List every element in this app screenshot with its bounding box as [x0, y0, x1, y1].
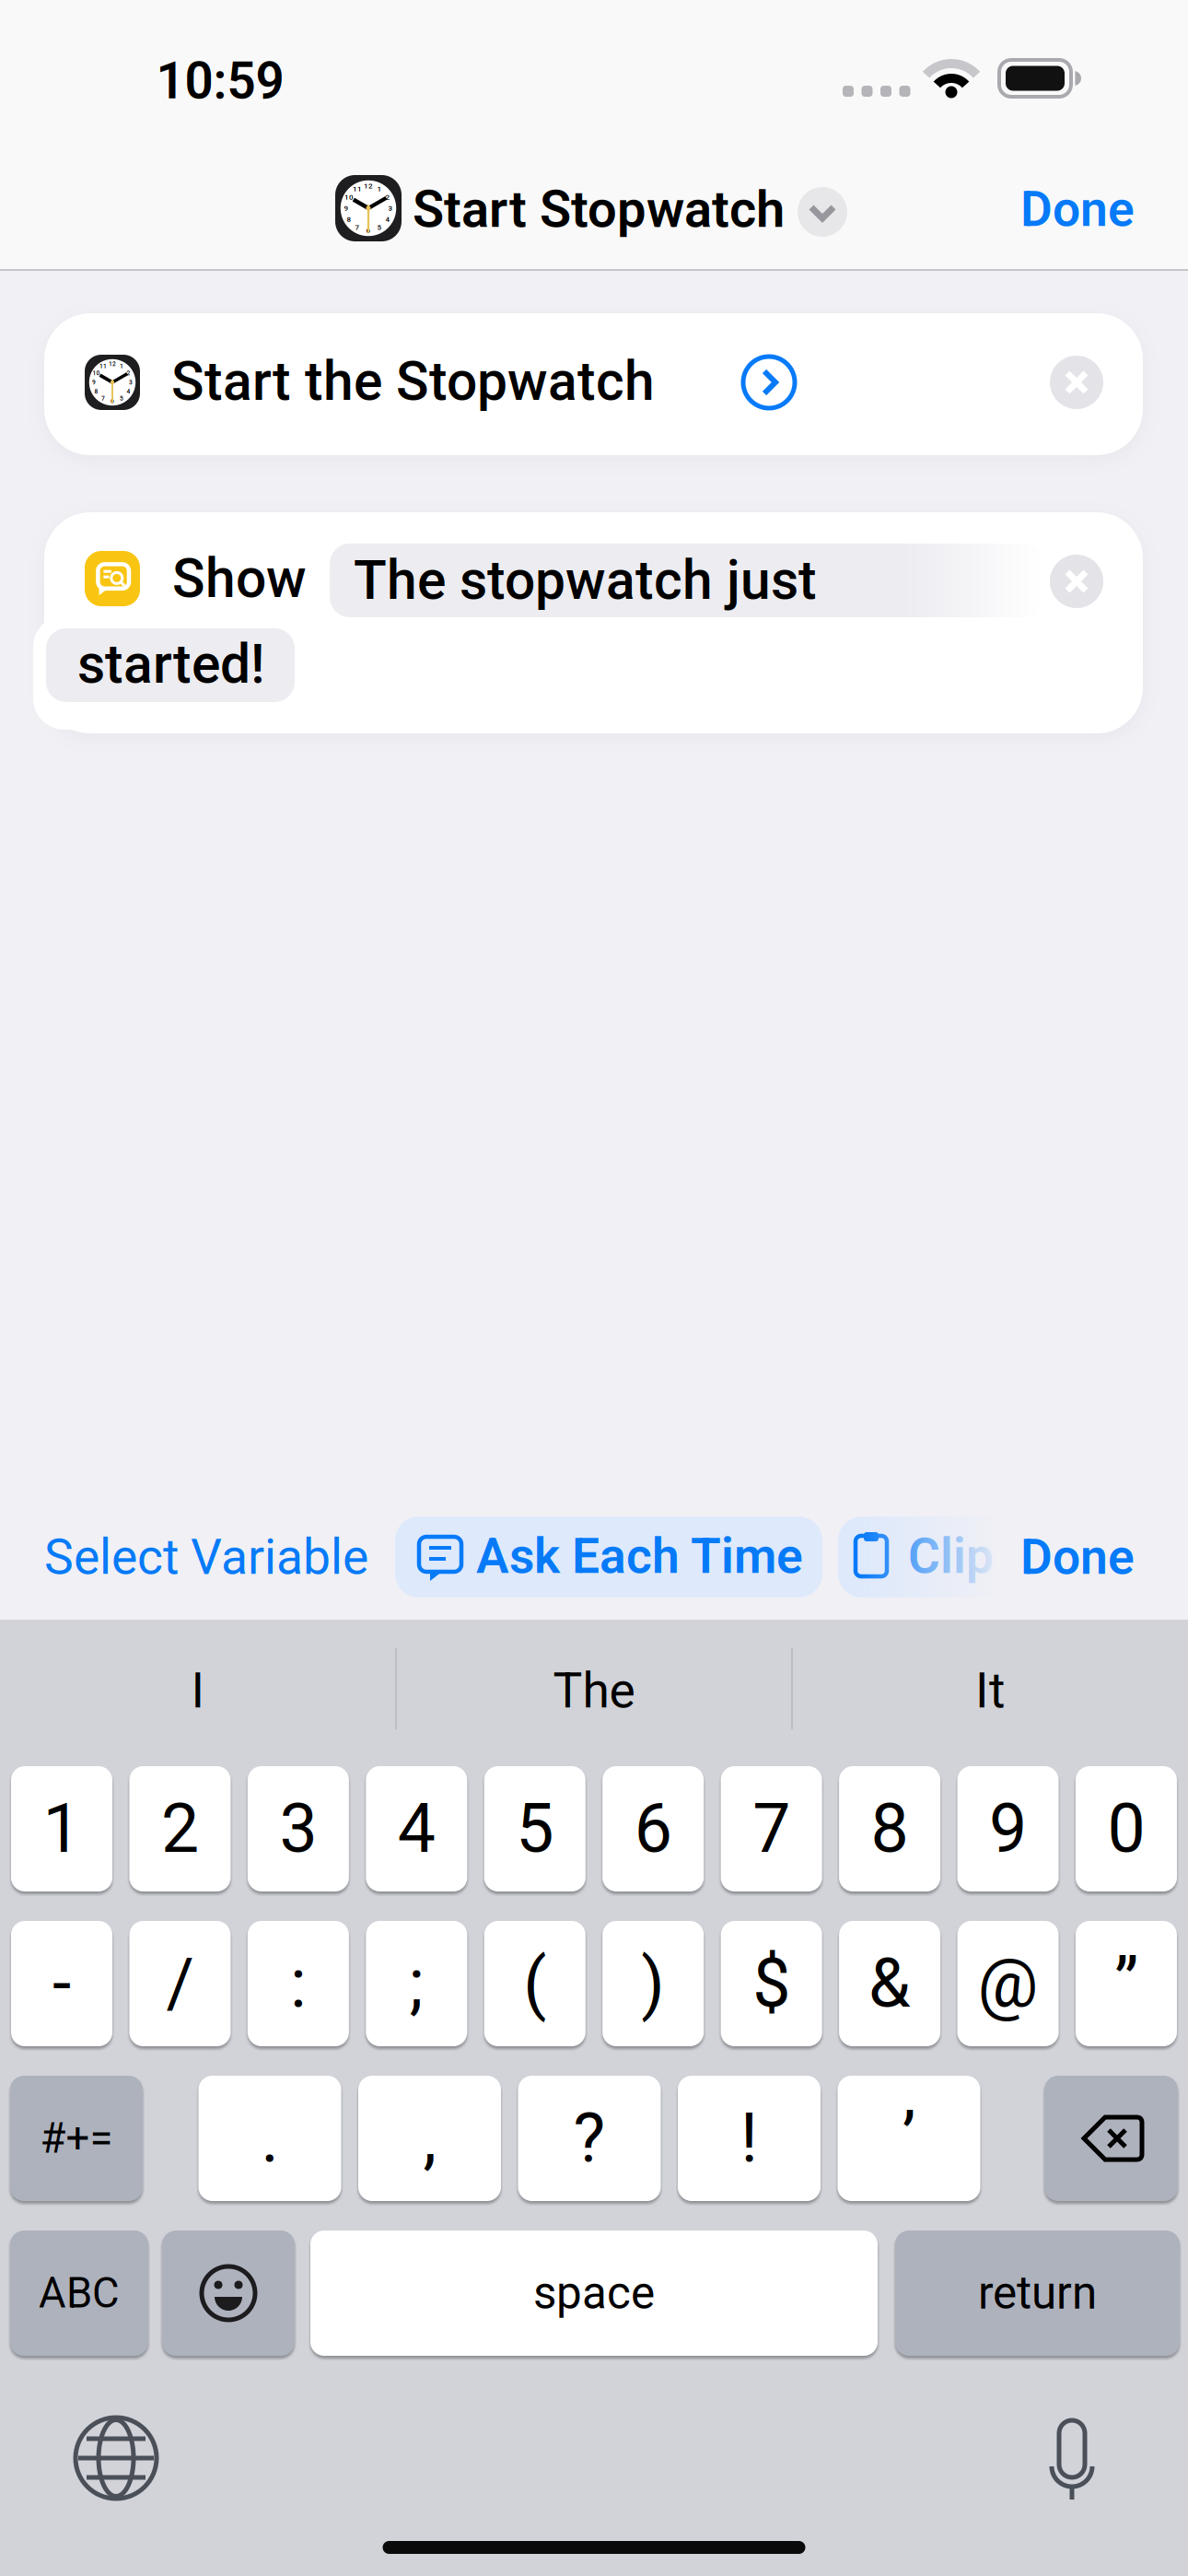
button[interactable]: :: [248, 1921, 349, 2046]
button[interactable]: 8: [839, 1766, 940, 1891]
staticText: $: [752, 1945, 790, 2022]
button[interactable]: Dictate: [1052, 2418, 1092, 2501]
staticText: 10:59: [156, 52, 284, 110]
button[interactable]: 1: [11, 1766, 112, 1891]
button[interactable]: 3: [248, 1766, 349, 1891]
staticText: Show: [172, 548, 307, 609]
staticText: 7: [752, 1790, 790, 1867]
staticText: 4: [127, 388, 130, 395]
button[interactable]: Clipboard: [838, 1516, 1068, 1598]
button[interactable]: 9: [957, 1766, 1059, 1891]
button[interactable]: /: [129, 1921, 231, 2046]
button[interactable]: Done: [1020, 1529, 1135, 1585]
button[interactable]: Delete Action: [1050, 555, 1103, 608]
button[interactable]: ): [602, 1921, 704, 2046]
button[interactable]: return: [895, 2231, 1180, 2356]
staticText: 2: [127, 370, 130, 377]
staticText: #+=: [40, 2115, 113, 2162]
button[interactable]: space: [310, 2231, 878, 2356]
button[interactable]: It: [815, 1635, 1165, 1746]
button[interactable]: Shortcut Options: [798, 187, 847, 237]
button[interactable]: Delete Action: [1050, 356, 1103, 409]
button[interactable]: 1: [44, 313, 1143, 455]
staticText: The stopwatch just: [354, 550, 817, 611]
staticText: !: [740, 2100, 758, 2177]
staticText: 8: [347, 215, 351, 224]
staticText: &: [869, 1945, 911, 2022]
staticText: /: [166, 1945, 194, 2022]
staticText: ”: [1114, 1945, 1138, 2022]
button[interactable]: Done: [1020, 181, 1135, 237]
button[interactable]: Delete: [1044, 2076, 1178, 2201]
staticText: 3: [129, 379, 133, 386]
button[interactable]: Show: [44, 512, 1143, 733]
staticText: ;: [409, 1945, 424, 2022]
button[interactable]: #+=: [10, 2076, 143, 2201]
button[interactable]: ;: [366, 1921, 467, 2046]
button[interactable]: 2: [129, 1766, 231, 1891]
button[interactable]: The: [419, 1635, 769, 1746]
staticText: 11: [353, 185, 362, 193]
staticText: 4: [385, 215, 390, 224]
button[interactable]: Select Variable: [44, 1529, 368, 1585]
staticText: 11: [99, 363, 107, 370]
staticText: :: [290, 1945, 307, 2022]
staticText: 8: [94, 388, 98, 395]
button[interactable]: ,: [358, 2076, 501, 2201]
staticText: 1: [43, 1790, 81, 1867]
button[interactable]: !: [678, 2076, 821, 2201]
button[interactable]: (: [484, 1921, 586, 2046]
staticText: 2: [385, 193, 390, 201]
button[interactable]: 5: [484, 1766, 586, 1891]
staticText: @: [978, 1945, 1038, 2022]
button[interactable]: @: [957, 1921, 1059, 2046]
button[interactable]: $: [721, 1921, 822, 2046]
staticText: ): [641, 1945, 665, 2022]
button[interactable]: &: [839, 1921, 940, 2046]
staticText: Start Stopwatch: [413, 180, 785, 239]
staticText: I: [191, 1663, 205, 1719]
button[interactable]: Emoji: [162, 2231, 295, 2356]
staticText: 8: [871, 1790, 909, 1867]
staticText: return: [978, 2267, 1097, 2319]
staticText: 7: [355, 223, 360, 232]
staticText: (: [523, 1945, 546, 2022]
staticText: 4: [398, 1790, 435, 1867]
staticText: 1: [377, 185, 382, 193]
button[interactable]: ”: [1076, 1921, 1177, 2046]
staticText: 9: [989, 1790, 1027, 1867]
staticText: 9: [92, 379, 96, 386]
staticText: .: [261, 2100, 279, 2177]
staticText: 0: [1107, 1790, 1145, 1867]
staticText: 10: [345, 193, 354, 201]
button[interactable]: 0: [1076, 1766, 1177, 1891]
staticText: 12: [109, 360, 116, 367]
button[interactable]: ’: [838, 2076, 980, 2201]
button[interactable]: -: [11, 1921, 112, 2046]
staticText: The: [553, 1663, 635, 1719]
staticText: space: [533, 2267, 655, 2319]
button[interactable]: .: [198, 2076, 341, 2201]
staticText: 1: [120, 363, 123, 370]
staticText: 6: [111, 397, 114, 404]
staticText: 12: [364, 182, 373, 190]
staticText: Select Variable: [44, 1529, 368, 1585]
staticText: 7: [101, 395, 105, 402]
staticText: ,: [423, 2100, 436, 2177]
staticText: Ask Each Time: [476, 1528, 803, 1584]
button[interactable]: Ask Each Time: [395, 1516, 822, 1598]
button[interactable]: 7: [721, 1766, 822, 1891]
staticText: 3: [279, 1790, 317, 1867]
button[interactable]: 6: [602, 1766, 704, 1891]
button[interactable]: ?: [518, 2076, 661, 2201]
button[interactable]: Show Details: [742, 356, 796, 409]
staticText: 9: [344, 204, 348, 212]
staticText: Clip: [908, 1528, 994, 1584]
staticText: 5: [377, 223, 382, 232]
staticText: 2: [161, 1790, 199, 1867]
staticText: 3: [388, 204, 393, 212]
button[interactable]: ABC: [10, 2231, 148, 2356]
button[interactable]: 4: [366, 1766, 467, 1891]
button[interactable]: I: [23, 1635, 373, 1746]
button[interactable]: Next Keyboard: [76, 2418, 157, 2499]
